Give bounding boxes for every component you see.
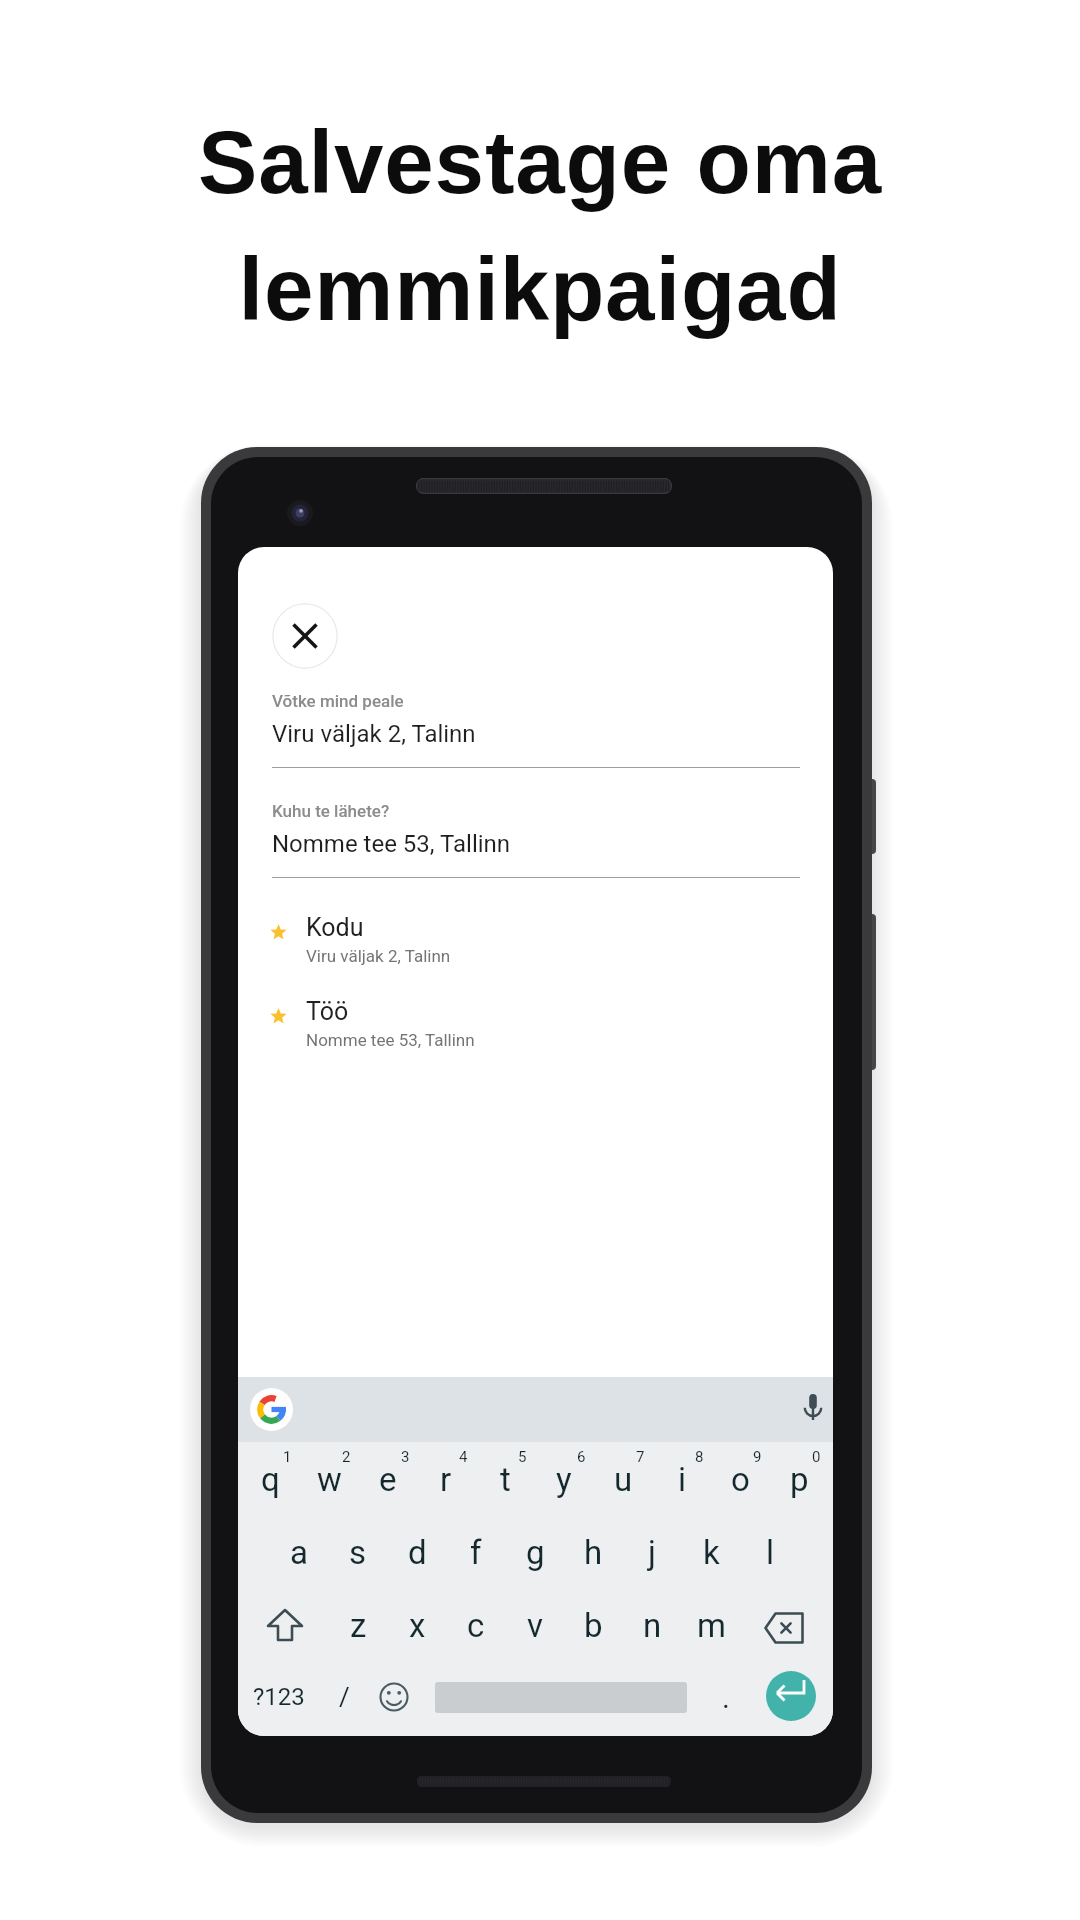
staticText: Salvestage oma: [0, 112, 1080, 211]
staticText: c: [467, 1606, 485, 1645]
button[interactable]: b: [567, 1593, 619, 1657]
staticText: p: [790, 1460, 809, 1499]
staticText: 5: [518, 1448, 527, 1466]
staticText: 3: [401, 1448, 410, 1466]
staticText: Nomme tee 53, Tallinn: [306, 1030, 475, 1050]
button[interactable]: Shift: [257, 1598, 313, 1654]
button[interactable]: s: [332, 1520, 384, 1584]
button[interactable]: Emoji: [372, 1673, 416, 1717]
button[interactable]: Enter: [766, 1671, 816, 1721]
staticText: x: [409, 1606, 426, 1645]
staticText: s: [349, 1533, 367, 1572]
button[interactable]: /: [325, 1669, 363, 1725]
staticText: .: [722, 1680, 730, 1715]
button[interactable]: p: [773, 1447, 825, 1511]
staticText: Viru väljak 2, Talinn: [306, 946, 451, 966]
staticText: 7: [636, 1448, 645, 1466]
staticText: m: [697, 1606, 726, 1645]
button[interactable]: Backspace: [755, 1600, 813, 1656]
button[interactable]: .: [708, 1669, 744, 1725]
button[interactable]: y: [538, 1447, 590, 1511]
staticText: z: [350, 1606, 367, 1645]
button[interactable]: e: [362, 1447, 414, 1511]
staticText: Kuhu te lähete?: [272, 801, 390, 821]
staticText: l: [766, 1533, 775, 1572]
staticText: Võtke mind peale: [272, 691, 404, 711]
staticText: t: [500, 1460, 511, 1499]
button[interactable]: g: [509, 1520, 561, 1584]
button[interactable]: o: [714, 1447, 766, 1511]
staticText: /: [339, 1682, 350, 1712]
staticText: u: [614, 1460, 633, 1499]
button[interactable]: k: [685, 1520, 737, 1584]
staticText: Töö: [306, 997, 349, 1026]
button[interactable]: h: [567, 1520, 619, 1584]
staticText: Nomme tee 53, Tallinn: [272, 830, 511, 858]
button[interactable]: t: [479, 1447, 531, 1511]
staticText: h: [584, 1533, 603, 1572]
staticText: Viru väljak 2, Talinn: [272, 720, 476, 748]
staticText: f: [470, 1533, 482, 1572]
staticText: r: [440, 1460, 452, 1499]
button[interactable]: j: [626, 1520, 678, 1584]
staticText: 4: [459, 1448, 468, 1466]
staticText: 0: [812, 1448, 821, 1466]
button[interactable]: x: [391, 1593, 443, 1657]
button[interactable]: Töö: [238, 997, 833, 1067]
staticText: 8: [695, 1448, 704, 1466]
staticText: k: [703, 1533, 720, 1572]
staticText: Kodu: [306, 913, 364, 942]
button[interactable]: i: [656, 1447, 708, 1511]
staticText: d: [408, 1533, 427, 1572]
staticText: v: [527, 1606, 543, 1645]
staticText: q: [261, 1460, 280, 1499]
button[interactable]: m: [685, 1593, 737, 1657]
button[interactable]: r: [420, 1447, 472, 1511]
button[interactable]: z: [332, 1593, 384, 1657]
button[interactable]: c: [450, 1593, 502, 1657]
button[interactable]: u: [597, 1447, 649, 1511]
staticText: lemmikpaigad: [0, 239, 1080, 338]
button[interactable]: Google Search: [250, 1388, 293, 1431]
staticText: g: [526, 1533, 545, 1572]
staticText: a: [290, 1533, 308, 1572]
button[interactable]: ?123: [246, 1669, 312, 1725]
button[interactable]: w: [303, 1447, 355, 1511]
button[interactable]: d: [391, 1520, 443, 1584]
staticText: o: [731, 1460, 750, 1499]
button[interactable]: Kodu: [238, 913, 833, 983]
button[interactable]: n: [626, 1593, 678, 1657]
staticText: y: [556, 1460, 572, 1499]
button[interactable]: l: [744, 1520, 796, 1584]
staticText: j: [648, 1533, 656, 1572]
button[interactable]: q: [244, 1447, 296, 1511]
button[interactable]: Voice input: [793, 1386, 833, 1426]
staticText: e: [379, 1460, 397, 1499]
staticText: ?123: [253, 1683, 305, 1711]
button[interactable]: a: [273, 1520, 325, 1584]
staticText: 6: [577, 1448, 586, 1466]
staticText: b: [584, 1606, 603, 1645]
staticText: n: [643, 1606, 662, 1645]
button[interactable]: Close: [272, 603, 338, 669]
staticText: i: [678, 1460, 687, 1499]
button[interactable]: f: [450, 1520, 502, 1584]
button[interactable]: v: [509, 1593, 561, 1657]
staticText: 9: [753, 1448, 762, 1466]
staticText: 1: [283, 1448, 292, 1466]
staticText: w: [317, 1460, 342, 1499]
staticText: 2: [342, 1448, 351, 1466]
